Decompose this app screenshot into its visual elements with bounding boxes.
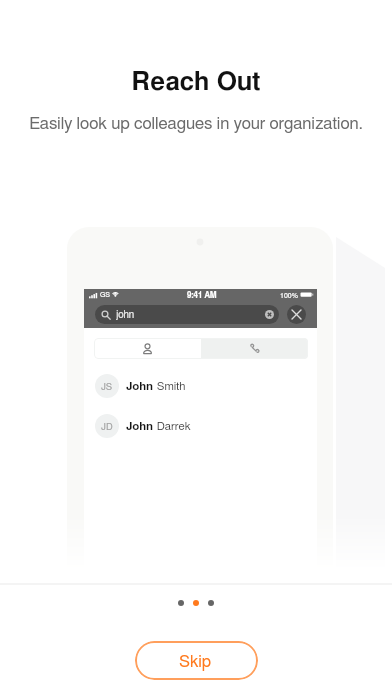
staticText: Easily look up colleagues in your organi… xyxy=(0,115,392,132)
button[interactable]: Close search xyxy=(287,305,306,324)
button[interactable]: Skip xyxy=(135,641,258,680)
button[interactable]: JS xyxy=(84,374,317,398)
staticText: GS xyxy=(100,291,110,298)
staticText: Skip xyxy=(179,654,212,670)
staticText: JD xyxy=(101,422,113,431)
staticText: Darrek xyxy=(154,421,191,432)
button[interactable]: People xyxy=(94,338,201,359)
button[interactable]: john xyxy=(95,305,279,324)
button[interactable]: JD xyxy=(84,414,317,438)
staticText: Reach Out xyxy=(0,69,392,95)
button[interactable]: Calls xyxy=(201,338,308,359)
staticText: Smith xyxy=(154,381,186,392)
staticText: John xyxy=(126,421,154,432)
staticText: JS xyxy=(101,382,113,391)
staticText: john xyxy=(116,310,135,320)
staticText: John xyxy=(126,381,154,392)
staticText: 100% xyxy=(280,292,298,299)
staticText: 9:41 AM xyxy=(187,292,217,300)
